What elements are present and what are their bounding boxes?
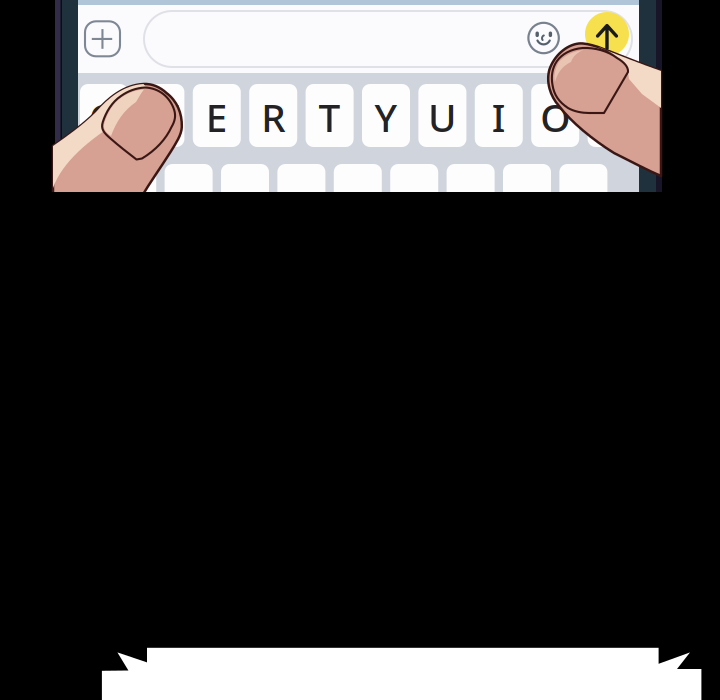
button[interactable]: Add attachment: [0, 0, 720, 700]
staticText: I: [492, 91, 506, 143]
staticText: Y: [374, 91, 397, 143]
button[interactable]: Emoji: [0, 0, 720, 700]
staticText: W: [142, 91, 178, 143]
staticText: U: [428, 91, 457, 143]
staticText: R: [261, 91, 285, 143]
staticText: E: [206, 91, 228, 143]
staticText: T: [319, 91, 341, 143]
staticText: P: [600, 91, 624, 143]
staticText: Q: [89, 91, 119, 143]
button[interactable]: Send: [0, 0, 720, 700]
staticText: O: [540, 91, 570, 143]
